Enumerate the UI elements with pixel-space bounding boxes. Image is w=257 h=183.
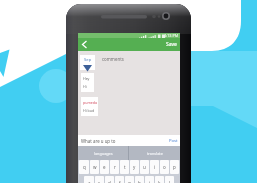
staticText: pumeda [83,100,98,105]
button[interactable]: y [130,160,139,174]
staticText: i [154,164,156,170]
staticText: h [138,180,141,183]
button[interactable]: languages [78,146,128,160]
button[interactable]: r [110,160,119,174]
button[interactable]: Back [78,38,91,51]
staticText: p [173,164,176,170]
staticText: a [88,180,91,183]
staticText: l [169,180,171,183]
button[interactable]: l [165,176,174,183]
staticText: Post [169,138,178,144]
button[interactable]: f [115,176,124,183]
staticText: f [119,180,121,183]
button[interactable]: o [160,160,169,174]
staticText: t [124,164,126,170]
staticText: g [128,180,131,183]
button[interactable]: t [120,160,129,174]
staticText: w [93,164,97,170]
button[interactable]: q [79,160,89,174]
staticText: u [143,164,146,170]
staticText: languages [94,151,113,156]
button[interactable]: g [125,176,134,183]
button[interactable]: Save [166,41,177,48]
staticText: e [103,164,106,170]
staticText: What are u up to [81,138,169,144]
button[interactable]: e [100,160,109,174]
staticText: j [149,180,151,183]
staticText: Hi [83,84,87,89]
staticText: k [158,180,161,183]
staticText: r [114,164,116,170]
staticText: y [133,164,136,170]
staticText: comments [102,56,124,62]
button[interactable]: j [145,176,154,183]
staticText: translate [147,151,163,156]
button[interactable]: comments [102,56,124,62]
button[interactable]: pumeda [81,97,98,116]
staticText: Hi bud [83,108,95,113]
staticText: d [108,180,111,183]
staticText: s [98,180,101,183]
staticText: q [83,164,86,170]
staticText: Sep [84,57,92,63]
staticText: Save [166,41,177,48]
button[interactable]: Sep avatar [80,55,95,70]
button[interactable]: a [84,176,94,183]
button[interactable]: p [170,160,179,174]
staticText: o [163,164,166,170]
button[interactable]: Post [169,138,178,144]
button[interactable]: i [150,160,159,174]
button[interactable]: h [135,176,144,183]
button[interactable]: w [90,160,99,174]
button[interactable]: Hey [81,73,94,92]
button[interactable]: d [105,176,114,183]
staticText: 4:13 PM [164,33,179,38]
button[interactable]: u [140,160,149,174]
button[interactable]: k [155,176,164,183]
button[interactable]: translate [129,146,180,160]
staticText: Hey [83,76,90,81]
button[interactable]: s [95,176,104,183]
